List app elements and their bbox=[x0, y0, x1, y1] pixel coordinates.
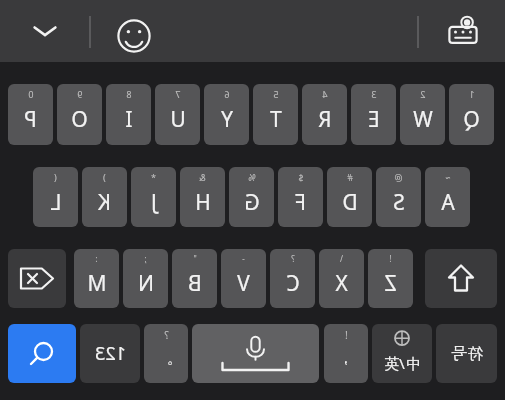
staticText: & bbox=[199, 171, 206, 183]
staticText: Q bbox=[463, 105, 480, 134]
staticText: " bbox=[193, 253, 197, 264]
staticText: T bbox=[270, 105, 282, 134]
button[interactable]: ! bbox=[324, 324, 368, 383]
staticText: C bbox=[286, 269, 300, 298]
button[interactable]: 3 bbox=[351, 84, 396, 145]
staticText: ; bbox=[144, 253, 147, 264]
button[interactable]: 0 bbox=[8, 84, 53, 145]
staticText: @ bbox=[394, 171, 403, 183]
button[interactable]: ( bbox=[33, 167, 78, 227]
button[interactable]: : bbox=[74, 249, 119, 308]
button[interactable]: - bbox=[221, 249, 266, 308]
staticText: ~ bbox=[445, 171, 451, 183]
staticText: # bbox=[347, 171, 353, 183]
staticText: $ bbox=[298, 171, 304, 183]
button[interactable]: Switch language bbox=[372, 324, 432, 383]
staticText: 符号 bbox=[451, 344, 483, 364]
staticText: * bbox=[151, 171, 156, 183]
staticText: 3 bbox=[371, 88, 377, 100]
staticText: 4 bbox=[322, 88, 328, 100]
button[interactable]: Space bbox=[192, 324, 319, 383]
staticText: 8 bbox=[126, 88, 132, 100]
staticText: E bbox=[368, 105, 380, 134]
staticText: ? bbox=[164, 328, 169, 342]
staticText: N bbox=[138, 269, 154, 298]
staticText: 1 bbox=[469, 88, 475, 100]
staticText: 0 bbox=[28, 88, 34, 100]
button[interactable]: Emoji bbox=[112, 14, 156, 58]
button[interactable]: 6 bbox=[204, 84, 249, 145]
button[interactable]: ! bbox=[368, 249, 413, 308]
staticText: M bbox=[87, 269, 107, 298]
staticText: ! bbox=[389, 253, 392, 264]
staticText: W bbox=[413, 105, 433, 134]
staticText: ) bbox=[103, 171, 106, 183]
button[interactable]: ) bbox=[82, 167, 127, 227]
button[interactable]: ~ bbox=[425, 167, 470, 227]
button[interactable]: 123 bbox=[80, 324, 140, 383]
staticText: : bbox=[95, 253, 98, 264]
staticText: 6 bbox=[224, 88, 230, 100]
staticText: V bbox=[237, 269, 250, 298]
staticText: L bbox=[50, 188, 62, 217]
staticText: ? bbox=[291, 253, 295, 264]
staticText: I bbox=[125, 105, 133, 134]
button[interactable]: 2 bbox=[400, 84, 445, 145]
staticText: R bbox=[318, 105, 332, 134]
button[interactable]: 7 bbox=[155, 84, 200, 145]
button[interactable]: " bbox=[172, 249, 217, 308]
staticText: 123 bbox=[95, 341, 126, 366]
staticText: S bbox=[393, 188, 405, 217]
staticText: G bbox=[244, 188, 260, 217]
staticText: % bbox=[248, 171, 256, 183]
staticText: K bbox=[98, 188, 111, 217]
button[interactable]: Backspace bbox=[8, 249, 66, 308]
button[interactable]: Switch keyboard bbox=[440, 12, 486, 52]
button[interactable]: \ bbox=[319, 249, 364, 308]
staticText: U bbox=[170, 105, 186, 134]
staticText: Y bbox=[221, 105, 233, 134]
button[interactable]: & bbox=[180, 167, 225, 227]
button[interactable]: ? bbox=[144, 324, 188, 383]
button[interactable]: * bbox=[131, 167, 176, 227]
staticText: Z bbox=[384, 269, 397, 298]
button[interactable]: 5 bbox=[253, 84, 298, 145]
staticText: D bbox=[342, 188, 358, 217]
button[interactable]: $ bbox=[278, 167, 323, 227]
staticText: F bbox=[295, 188, 306, 217]
button[interactable]: ; bbox=[123, 249, 168, 308]
staticText: ! bbox=[345, 328, 348, 342]
button[interactable]: 8 bbox=[106, 84, 151, 145]
button[interactable]: 9 bbox=[57, 84, 102, 145]
staticText: ( bbox=[54, 171, 57, 183]
button[interactable]: # bbox=[327, 167, 372, 227]
staticText: 9 bbox=[77, 88, 83, 100]
button[interactable]: ? bbox=[270, 249, 315, 308]
button[interactable]: Hide keyboard bbox=[22, 12, 68, 50]
staticText: O bbox=[71, 105, 88, 134]
staticText: X bbox=[335, 269, 348, 298]
staticText: A bbox=[441, 188, 455, 217]
button[interactable]: @ bbox=[376, 167, 421, 227]
staticText: H bbox=[195, 188, 211, 217]
staticText: 。 bbox=[159, 350, 173, 368]
staticText: - bbox=[242, 253, 245, 264]
button[interactable]: % bbox=[229, 167, 274, 227]
button[interactable]: 1 bbox=[449, 84, 494, 145]
staticText: B bbox=[188, 269, 202, 298]
staticText: ， bbox=[339, 350, 353, 368]
staticText: 5 bbox=[273, 88, 279, 100]
button[interactable]: 4 bbox=[302, 84, 347, 145]
button[interactable]: Search bbox=[8, 324, 76, 383]
button[interactable]: Shift bbox=[425, 249, 497, 308]
staticText: 7 bbox=[175, 88, 181, 100]
button[interactable]: 符号 bbox=[436, 324, 497, 383]
staticText: 2 bbox=[420, 88, 426, 100]
staticText: 中/英 bbox=[384, 353, 420, 373]
staticText: P bbox=[24, 105, 37, 134]
staticText: J bbox=[151, 188, 157, 217]
staticText: \ bbox=[340, 253, 343, 264]
